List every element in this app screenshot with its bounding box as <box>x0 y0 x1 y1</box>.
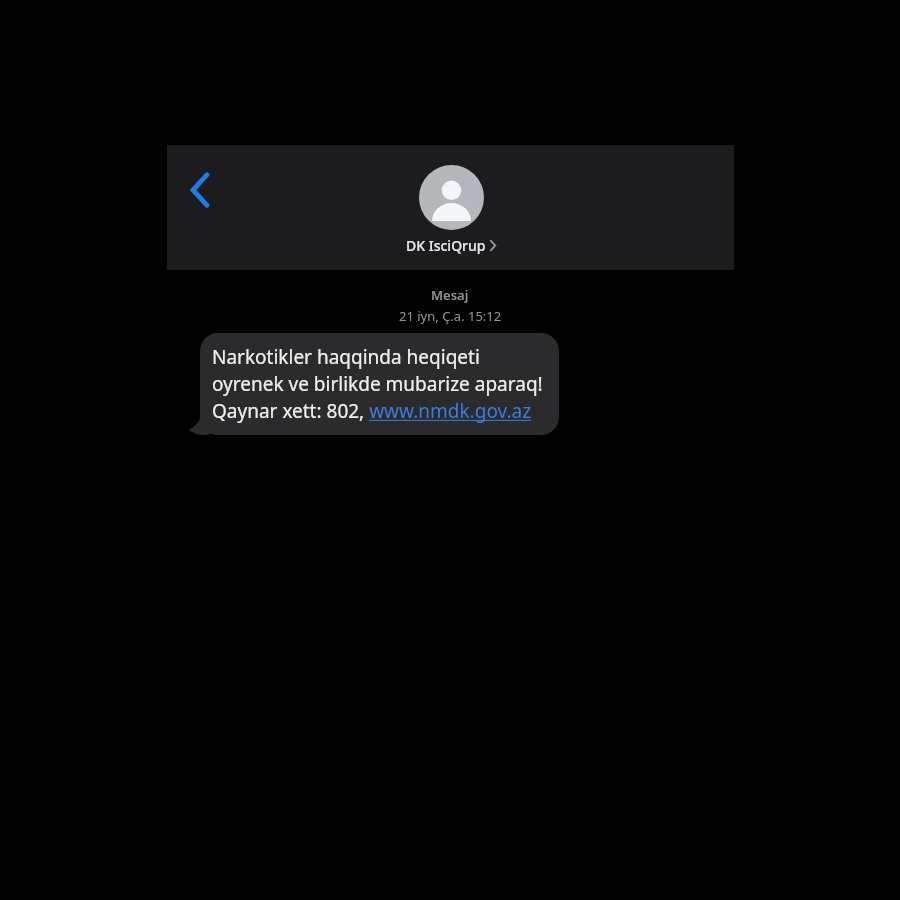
button[interactable]: Narkotikler haqqinda heqiqeti oyrenek ve… <box>200 333 559 435</box>
staticText: 21 iyn, Ç.a. 15:12 <box>399 307 502 325</box>
button[interactable]: DK IsciQrup <box>406 165 496 255</box>
staticText: Mesaj <box>431 286 469 304</box>
staticText: Narkotikler haqqinda heqiqeti oyrenek ve… <box>212 344 543 424</box>
button[interactable]: Back <box>173 163 227 217</box>
staticText: DK IsciQrup <box>406 236 486 255</box>
